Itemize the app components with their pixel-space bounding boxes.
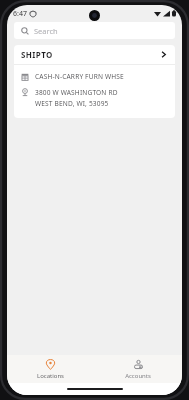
button[interactable]: Locations [7,357,94,382]
button[interactable]: SHIPTO [14,45,175,64]
button[interactable]: Search [14,22,175,39]
staticText: SHIPTO [21,49,53,60]
other: Open ship to details [159,50,168,59]
staticText: WEST BEND, WI, 53095 [35,99,109,108]
staticText: 3800 W WASHINGTON RD [35,88,118,97]
staticText: Locations [37,372,64,380]
staticText: Search [34,26,58,36]
staticText: CASH-N-CARRY FURN WHSE [35,72,124,81]
staticText: Accounts [125,372,151,380]
button[interactable]: Accounts [94,357,182,382]
staticText: 6:47 [13,9,27,19]
